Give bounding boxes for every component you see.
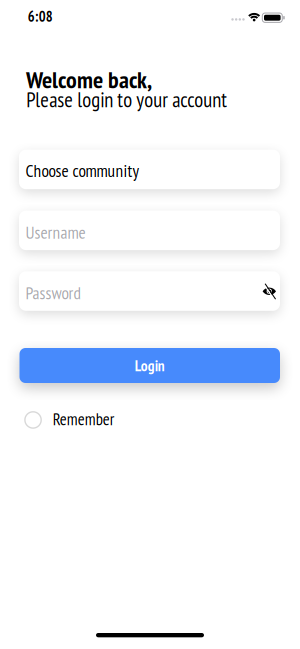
staticText: 6:08 [28, 7, 53, 26]
staticText: Login [135, 356, 165, 375]
staticText: Username [26, 221, 86, 243]
staticText: Password [26, 282, 82, 304]
button[interactable]: Remember [25, 412, 135, 429]
button[interactable]: Choose community [19, 150, 280, 189]
staticText: Welcome back, [26, 64, 152, 95]
staticText: Choose community [25, 159, 139, 182]
staticText: Please login to your account [26, 86, 227, 113]
button[interactable]: Login [19, 348, 280, 383]
button[interactable]: Username [19, 211, 280, 250]
button[interactable]: Show password [259, 281, 279, 301]
button[interactable]: Password [19, 271, 280, 311]
staticText: Remember [53, 408, 115, 430]
